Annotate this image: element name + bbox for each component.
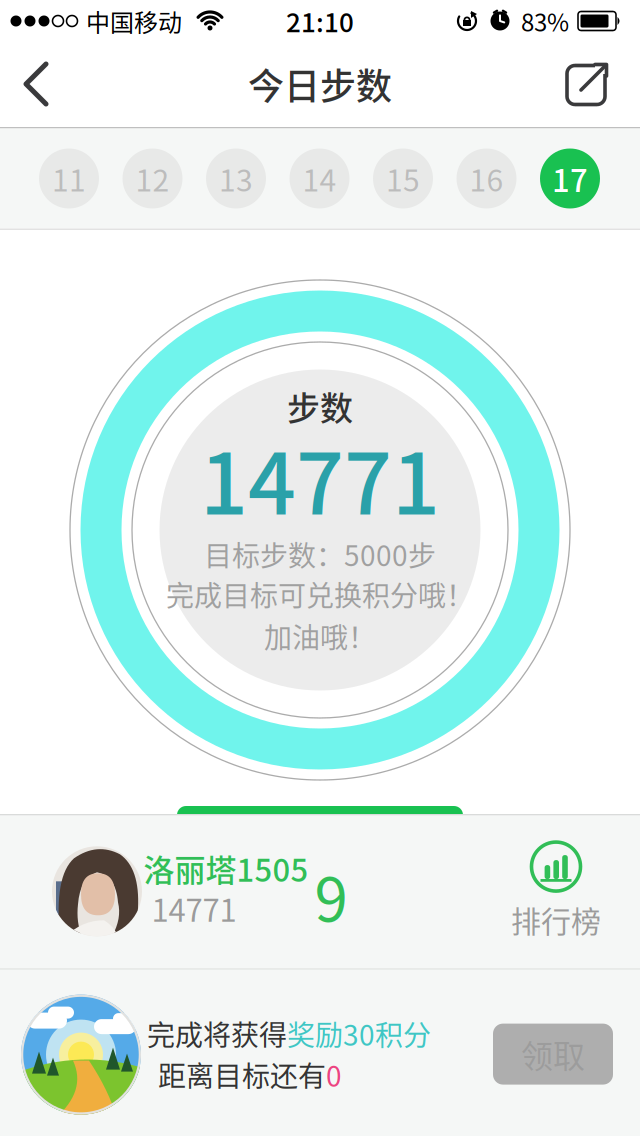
button[interactable]: 排行榜 [511, 842, 601, 941]
button[interactable]: 14 [289, 148, 349, 208]
staticText: 9 [314, 852, 347, 939]
staticText: 17 [552, 156, 588, 201]
staticText: 12 [135, 157, 169, 200]
button[interactable]: 15 [373, 148, 433, 208]
staticText: 奖励30积分 [287, 1013, 431, 1054]
staticText: 目标步数：5000步 [204, 534, 436, 574]
staticText: 完成目标可兑换积分哦！ [166, 574, 474, 614]
button[interactable]: 11 [39, 148, 99, 208]
staticText: 83% [521, 4, 569, 38]
button[interactable]: 17 [540, 148, 600, 208]
staticText: 距离目标还有 [158, 1054, 326, 1095]
staticText: 13 [219, 157, 253, 200]
button[interactable]: 12 [122, 148, 182, 208]
staticText: 排行榜 [511, 898, 601, 941]
staticText: 15 [386, 157, 420, 200]
staticText: 洛丽塔1505 [143, 846, 308, 891]
button[interactable]: 领取 [493, 1024, 613, 1085]
staticText: 14 [302, 157, 336, 200]
button[interactable]: 兑换 [177, 806, 463, 846]
button[interactable]: 16 [456, 148, 516, 208]
staticText: 16 [469, 157, 503, 200]
staticText: 完成将获得 [147, 1013, 287, 1054]
staticText: 14771 [151, 886, 236, 931]
staticText: 21:10 [286, 2, 354, 40]
staticText: 加油哦！ [264, 616, 376, 656]
staticText: 步数 [287, 382, 353, 430]
button[interactable]: 13 [206, 148, 266, 208]
staticText: 11 [52, 157, 86, 200]
staticText: 中国移动 [86, 4, 182, 38]
staticText: 14771 [200, 417, 440, 539]
staticText: 今日步数 [248, 58, 392, 110]
button[interactable]: Share [564, 59, 612, 107]
button[interactable]: Back [14, 56, 58, 112]
staticText: 0 [326, 1054, 342, 1095]
staticText: 领取 [521, 1031, 585, 1077]
